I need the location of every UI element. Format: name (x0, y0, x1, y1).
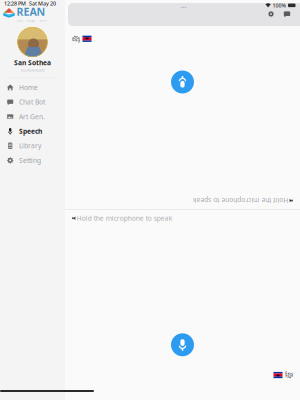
staticText: ••• (181, 4, 187, 10)
staticText: Hold the microphone to speak (77, 214, 173, 223)
staticText: Speech (19, 127, 42, 136)
staticText: REAN (16, 5, 45, 19)
staticText: Setting (19, 156, 41, 165)
staticText: San Sothea (14, 58, 51, 67)
staticText: ខ្មែរ (285, 370, 293, 380)
button[interactable]: Hold the microphone to speak (171, 333, 194, 356)
staticText: Learn · Engage · Grow (16, 19, 46, 22)
button[interactable]: Library (0, 138, 65, 153)
button[interactable]: Art Gen. (0, 109, 65, 124)
staticText: 100% (272, 2, 286, 9)
staticText: Art Gen. (19, 112, 45, 121)
button[interactable]: Speech (0, 124, 65, 138)
button[interactable]: Setting (0, 153, 65, 168)
staticText: Sat May 20 (29, 0, 56, 7)
staticText: Home (19, 83, 38, 92)
staticText: Hold the microphone to speak (77, 25, 173, 34)
button[interactable]: Home (0, 80, 65, 95)
staticText: 855969696400 (20, 68, 44, 73)
button[interactable]: Chat Bot (0, 95, 65, 109)
staticText: Chat Bot (19, 97, 45, 106)
staticText: Library (19, 141, 41, 150)
button[interactable]: Messages (283, 10, 291, 18)
button[interactable]: Settings (267, 10, 275, 18)
staticText: 12:28 PM (4, 0, 26, 7)
